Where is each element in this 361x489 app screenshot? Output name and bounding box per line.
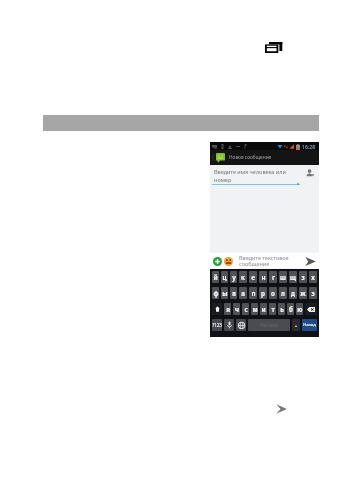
staticText: ш: [280, 273, 286, 281]
button[interactable]: [212, 303, 222, 315]
button[interactable]: з: [299, 271, 307, 283]
button[interactable]: ц: [221, 271, 228, 283]
button[interactable]: [305, 303, 317, 315]
staticText: й: [213, 273, 218, 281]
staticText: Назад: [303, 322, 316, 328]
button[interactable]: в: [230, 287, 237, 299]
button[interactable]: Send: [276, 403, 287, 415]
staticText: м: [252, 305, 258, 313]
button[interactable]: Send: [305, 256, 316, 267]
button[interactable]: Русский: [248, 319, 290, 331]
button[interactable]: Windows: [265, 42, 283, 53]
button[interactable]: у: [230, 271, 237, 283]
button[interactable]: [236, 319, 246, 331]
button[interactable]: й: [212, 271, 219, 283]
button[interactable]: м: [251, 303, 258, 315]
staticText: ю: [297, 305, 303, 313]
staticText: в: [232, 289, 236, 297]
button[interactable]: к: [239, 271, 247, 283]
button[interactable]: х: [309, 271, 317, 283]
staticText: ы: [222, 289, 228, 297]
staticText: к: [241, 273, 245, 281]
button[interactable]: ш: [279, 271, 287, 283]
staticText: э: [311, 289, 315, 297]
staticText: ч: [235, 305, 239, 313]
staticText: ж: [300, 289, 306, 297]
staticText: Новое сообщение: [229, 154, 272, 161]
button[interactable]: ?123: [212, 319, 222, 331]
staticText: а: [241, 289, 245, 297]
button[interactable]: Новое сообщение: [210, 150, 319, 165]
staticText: ?123: [212, 322, 222, 328]
button[interactable]: и: [260, 303, 267, 315]
staticText: я: [226, 305, 230, 313]
button[interactable]: ь: [278, 303, 285, 315]
button[interactable]: е: [249, 271, 257, 283]
staticText: р: [261, 289, 265, 297]
staticText: Русский: [260, 322, 278, 328]
staticText: и: [261, 305, 266, 313]
button[interactable]: л: [279, 287, 287, 299]
button[interactable]: д: [289, 287, 297, 299]
staticText: б: [289, 305, 293, 313]
button[interactable]: г: [269, 271, 277, 283]
button[interactable]: щ: [289, 271, 297, 283]
button[interactable]: ж: [299, 287, 307, 299]
staticText: о: [271, 289, 275, 297]
staticText: н: [261, 273, 266, 281]
staticText: ф: [213, 289, 219, 297]
button[interactable]: Emoji: [224, 257, 233, 266]
button[interactable]: э: [309, 287, 317, 299]
staticText: д: [291, 289, 295, 297]
button[interactable]: [224, 319, 234, 331]
button[interactable]: я: [224, 303, 231, 315]
button[interactable]: ф: [212, 287, 219, 299]
button[interactable]: .: [292, 319, 300, 331]
button[interactable]: Назад: [302, 319, 317, 331]
staticText: у: [232, 273, 236, 281]
staticText: п: [251, 289, 256, 297]
staticText: Введите имя человека или номер: [214, 168, 288, 184]
staticText: т: [271, 305, 275, 313]
button[interactable]: ч: [233, 303, 240, 315]
staticText: л: [281, 289, 285, 297]
button[interactable]: Введите имя человека или номер: [210, 165, 319, 190]
button[interactable]: ы: [221, 287, 228, 299]
button[interactable]: Contacts: [306, 169, 314, 177]
staticText: г: [272, 273, 275, 281]
button[interactable]: т: [269, 303, 276, 315]
staticText: з: [301, 273, 305, 281]
staticText: Введите текстовое сообщение: [239, 254, 304, 268]
button[interactable]: п: [249, 287, 257, 299]
staticText: х: [311, 273, 315, 281]
button[interactable]: Attach: [213, 257, 222, 266]
button[interactable]: р: [259, 287, 267, 299]
staticText: с: [244, 305, 248, 313]
staticText: е: [251, 273, 255, 281]
staticText: щ: [290, 273, 296, 281]
button[interactable]: с: [242, 303, 249, 315]
button[interactable]: а: [239, 287, 247, 299]
staticText: 16:28: [302, 143, 316, 150]
button[interactable]: о: [269, 287, 277, 299]
staticText: ц: [222, 273, 227, 281]
button[interactable]: б: [287, 303, 294, 315]
button[interactable]: н: [259, 271, 267, 283]
staticText: .: [295, 320, 297, 330]
staticText: ь: [280, 305, 284, 313]
button[interactable]: ю: [296, 303, 303, 315]
